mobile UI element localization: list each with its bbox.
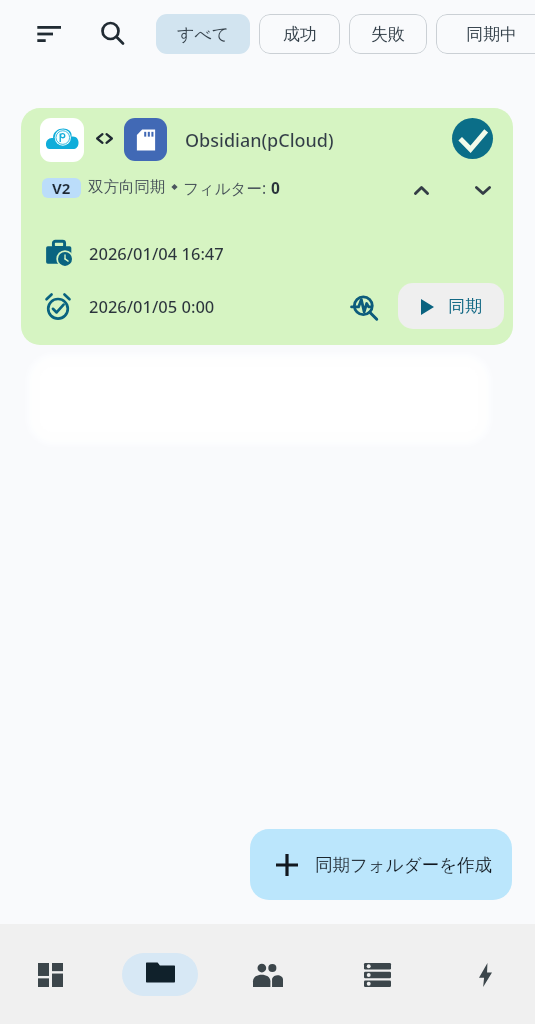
button[interactable]: Folders — [122, 953, 198, 996]
button[interactable]: Expand — [465, 172, 501, 208]
staticText: 2026/01/05 0:00 — [89, 295, 215, 317]
staticText: フィルター: — [183, 177, 271, 198]
button[interactable]: Monitor — [346, 289, 384, 327]
button[interactable]: 同期 — [398, 283, 504, 329]
button[interactable]: Dashboard — [12, 953, 88, 996]
button[interactable]: Obsidian(pCloud) — [21, 108, 513, 345]
button[interactable]: Search — [91, 12, 135, 56]
button[interactable]: Collapse — [403, 172, 439, 208]
button[interactable]: 失敗 — [349, 14, 427, 54]
button[interactable]: 成功 — [259, 14, 340, 54]
button[interactable]: すべて — [156, 14, 250, 54]
staticText: 失敗 — [371, 24, 405, 45]
staticText: 同期中 — [466, 24, 517, 45]
button[interactable]: 同期中 — [436, 14, 535, 54]
staticText: すべて — [177, 24, 230, 45]
button[interactable]: Activity — [447, 953, 523, 996]
staticText: 成功 — [283, 24, 317, 45]
staticText: V2 — [52, 178, 71, 198]
button[interactable]: Storage — [339, 953, 415, 996]
staticText: 双方向同期 — [88, 177, 166, 197]
staticText: 0 — [271, 177, 280, 198]
staticText: 2026/01/04 16:47 — [89, 242, 224, 264]
button[interactable]: Sort — [27, 12, 71, 56]
staticText: 同期 — [448, 296, 482, 317]
button[interactable]: 同期フォルダーを作成 — [250, 829, 512, 900]
staticText: Obsidian(pCloud) — [185, 128, 334, 153]
staticText: 同期フォルダーを作成 — [315, 854, 493, 876]
button[interactable]: Accounts — [230, 953, 306, 996]
